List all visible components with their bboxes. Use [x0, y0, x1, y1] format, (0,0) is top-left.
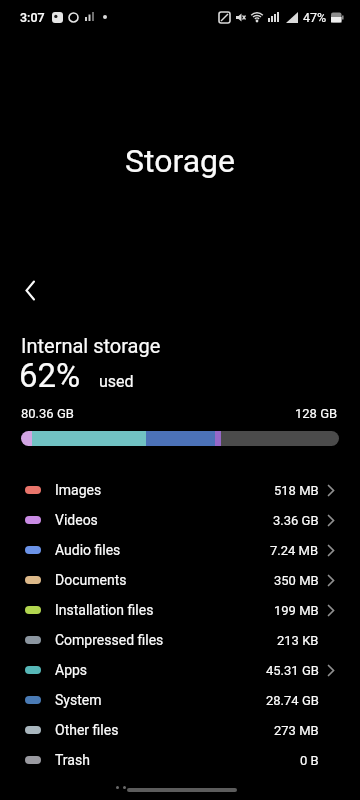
staticText: 45.31 GB [266, 663, 319, 678]
staticText: Videos [55, 512, 98, 528]
staticText: 47% [303, 10, 327, 25]
staticText: Audio files [55, 542, 121, 558]
staticText: 273 MB [274, 723, 319, 738]
staticText: 128 GB [295, 406, 338, 421]
staticText: 3:07 [20, 10, 45, 25]
button[interactable]: Installation files [0, 595, 360, 625]
button[interactable]: Videos [0, 505, 360, 535]
staticText: 350 MB [274, 573, 319, 588]
button[interactable]: Apps [0, 655, 360, 685]
staticText: 28.74 GB [266, 693, 319, 708]
staticText: Compressed files [55, 632, 164, 648]
staticText: Internal storage [21, 334, 161, 357]
button[interactable]: Images [0, 475, 360, 505]
staticText: used [99, 372, 134, 391]
button[interactable]: System [0, 685, 360, 715]
staticText: Documents [55, 572, 127, 588]
staticText: Storage [125, 142, 235, 180]
button[interactable]: Other files [0, 715, 360, 745]
staticText: 62% [19, 356, 81, 395]
button[interactable]: Compressed files [0, 625, 360, 655]
staticText: Other files [55, 722, 119, 738]
staticText: 80.36 GB [21, 406, 74, 421]
staticText: Installation files [55, 602, 154, 618]
staticText: 3.36 GB [273, 513, 319, 528]
staticText: Apps [55, 662, 88, 678]
button[interactable]: Trash [0, 745, 360, 775]
button[interactable]: Audio files [0, 535, 360, 565]
staticText: System [55, 692, 102, 708]
staticText: 518 MB [274, 483, 319, 498]
staticText: 213 KB [277, 633, 319, 648]
staticText: Images [55, 482, 102, 498]
button[interactable] [127, 788, 237, 792]
button[interactable]: Documents [0, 565, 360, 595]
staticText: Trash [55, 752, 90, 768]
staticText: 199 MB [274, 603, 319, 618]
staticText: 0 B [300, 753, 319, 768]
button[interactable] [12, 272, 48, 308]
staticText: 7.24 MB [270, 543, 319, 558]
